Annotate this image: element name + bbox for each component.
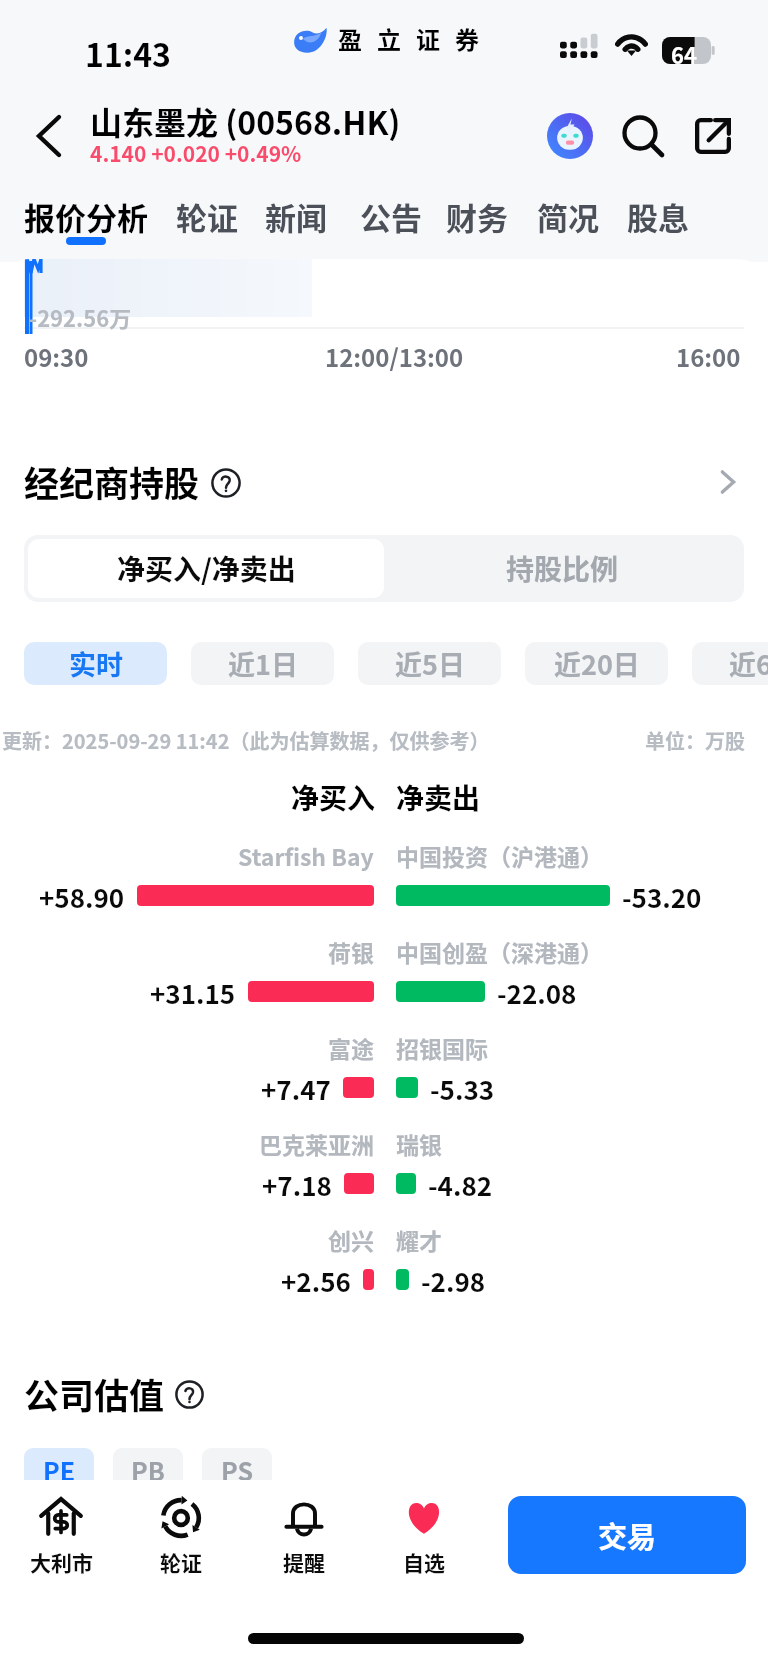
staticText: 瑞银: [396, 1127, 442, 1159]
staticText: 中国创盈（深港通）: [396, 935, 603, 967]
button[interactable]: 交易: [508, 1496, 746, 1574]
staticText: 轮证: [176, 194, 238, 239]
staticText: 更新：2025-09-29 11:42（此为估算数据，仅供参考）: [2, 726, 490, 755]
staticText: 近20日: [554, 644, 640, 683]
staticText: 11:43: [85, 30, 171, 76]
staticText: 巴克莱亚洲: [259, 1127, 374, 1159]
staticText: 09:30: [24, 339, 89, 374]
staticText: PB: [131, 1452, 165, 1488]
staticText: -2.98: [421, 1262, 486, 1296]
staticText: 近6日: [729, 644, 768, 683]
staticText: 单位：万股: [645, 726, 745, 755]
staticText: 经纪商持股: [24, 456, 200, 507]
staticText: 大利市: [30, 1547, 93, 1577]
button[interactable]: 持股比例: [384, 539, 740, 598]
staticText: 中国投资（沪港通）: [396, 839, 603, 871]
button[interactable]: 实时: [24, 642, 167, 685]
staticText: 富途: [328, 1031, 374, 1063]
button[interactable]: 近20日: [525, 642, 668, 685]
staticText: 16:00: [676, 339, 741, 374]
button[interactable]: 财务: [441, 186, 513, 248]
staticText: +58.90: [39, 878, 125, 912]
button[interactable]: 提醒: [249, 1496, 359, 1577]
staticText: 近5日: [395, 644, 465, 683]
button[interactable]: 自选: [369, 1496, 479, 1577]
staticText: 4.140 +0.020 +0.49%: [90, 138, 302, 168]
staticText: +31.15: [150, 974, 236, 1008]
button[interactable]: 经纪商持股: [0, 446, 768, 514]
staticText: 盈立证券: [338, 21, 494, 56]
staticText: 持股比例: [506, 548, 619, 589]
button[interactable]: 新闻: [260, 186, 332, 248]
staticText: -292.56万: [29, 301, 132, 333]
staticText: 公司估值: [24, 1368, 165, 1419]
button[interactable]: 轮证: [174, 186, 240, 248]
button[interactable]: PE: [24, 1448, 94, 1492]
button[interactable]: 大利市: [6, 1496, 116, 1577]
staticText: Starfish Bay: [238, 839, 374, 871]
staticText: 64: [671, 38, 697, 65]
staticText: +2.56: [281, 1262, 351, 1296]
staticText: 新闻: [265, 194, 327, 239]
staticText: -5.33: [430, 1070, 495, 1104]
staticText: -4.82: [428, 1166, 493, 1200]
staticText: 实时: [69, 644, 123, 683]
staticText: 净卖出: [396, 777, 481, 818]
staticText: 耀才: [396, 1223, 442, 1255]
staticText: 近1日: [228, 644, 298, 683]
button[interactable]: 净买入/净卖出: [28, 539, 384, 598]
button[interactable]: PS: [202, 1448, 272, 1492]
button[interactable]: 近6日: [692, 642, 768, 685]
button[interactable]: AI assistant: [537, 103, 603, 169]
button[interactable]: 股息: [622, 186, 694, 248]
button[interactable]: PB: [113, 1448, 183, 1492]
button[interactable]: 公告: [356, 186, 426, 248]
button[interactable]: Search: [618, 112, 670, 164]
staticText: 自选: [403, 1547, 445, 1577]
staticText: 创兴: [328, 1223, 374, 1255]
staticText: 公告: [360, 194, 422, 239]
button[interactable]: Back: [14, 103, 84, 169]
staticText: 财务: [446, 194, 508, 239]
staticText: 招银国际: [396, 1031, 488, 1063]
button[interactable]: 公司估值: [0, 1366, 768, 1426]
button[interactable]: Share: [683, 106, 743, 166]
staticText: PS: [221, 1452, 253, 1488]
staticText: 12:00/13:00: [325, 339, 464, 374]
staticText: 股息: [627, 194, 689, 239]
staticText: 山东墨龙 (00568.HK): [90, 98, 401, 144]
button[interactable]: 简况: [533, 186, 603, 248]
staticText: 荷银: [328, 935, 374, 967]
button[interactable]: 近5日: [358, 642, 501, 685]
button[interactable]: 近1日: [191, 642, 334, 685]
staticText: +7.47: [261, 1070, 331, 1104]
staticText: -53.20: [622, 878, 702, 912]
staticText: 报价分析: [24, 194, 148, 239]
button[interactable]: 报价分析: [23, 186, 149, 248]
staticText: 交易: [598, 1514, 657, 1556]
staticText: 简况: [537, 194, 599, 239]
staticText: +7.18: [262, 1166, 332, 1200]
staticText: 净买入/净卖出: [117, 548, 296, 589]
staticText: 净买入: [291, 777, 376, 818]
staticText: -22.08: [497, 974, 577, 1008]
button[interactable]: 轮证: [126, 1496, 236, 1577]
staticText: PE: [43, 1452, 76, 1488]
staticText: 提醒: [283, 1547, 325, 1577]
staticText: 轮证: [160, 1547, 202, 1577]
